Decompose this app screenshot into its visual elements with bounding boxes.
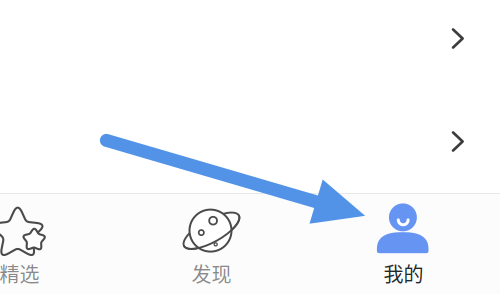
button[interactable]: Open (0, 0, 500, 90)
button[interactable]: 发现 (115, 194, 307, 294)
staticText: 发现 (191, 259, 231, 288)
staticText: 精选 (0, 259, 39, 288)
button[interactable]: 精选 (0, 194, 115, 294)
button[interactable]: Open (0, 90, 500, 193)
staticText: 我的 (383, 259, 423, 288)
button[interactable]: 我的 (307, 194, 499, 294)
